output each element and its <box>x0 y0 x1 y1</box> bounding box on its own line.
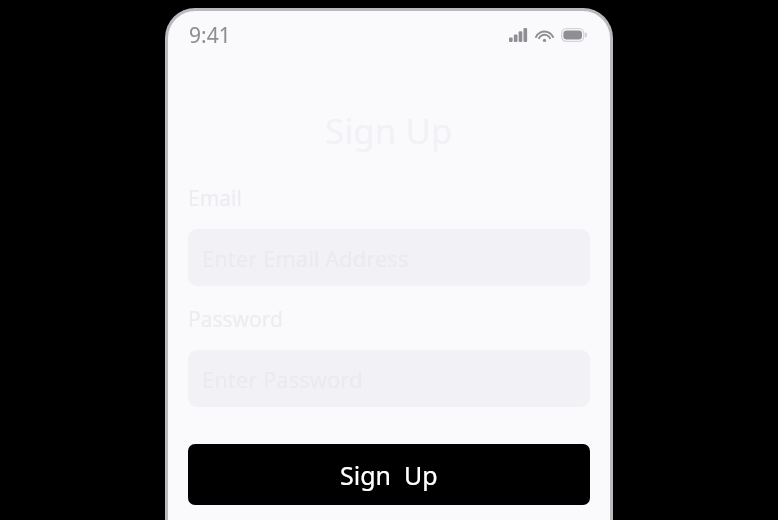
button[interactable]: Sign Up <box>188 444 590 505</box>
staticText: Sign Up <box>340 458 438 492</box>
staticText: 9:41 <box>189 21 231 50</box>
staticText: Email <box>188 184 242 213</box>
staticText: Password <box>188 305 283 334</box>
